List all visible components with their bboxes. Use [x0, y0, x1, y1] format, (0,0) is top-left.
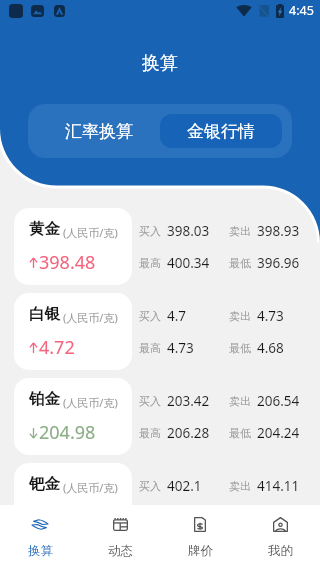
- staticText: 412.66: [39, 505, 96, 530]
- staticText: 最低: [229, 426, 251, 440]
- staticText: 最低: [229, 341, 251, 355]
- button[interactable]: 汇率换算: [38, 114, 160, 148]
- button[interactable]: 黄金: [14, 208, 132, 285]
- staticText: 换算: [28, 543, 53, 559]
- button[interactable]: 动态: [80, 505, 160, 569]
- staticText: 动态: [108, 543, 133, 559]
- staticText: 4.73: [167, 339, 194, 357]
- staticText: 400.34: [167, 254, 210, 272]
- staticText: 最高: [139, 341, 161, 355]
- staticText: 4.73: [257, 307, 284, 325]
- button[interactable]: 牌价: [160, 505, 240, 569]
- staticText: 4:45: [289, 2, 314, 19]
- staticText: 黄金: [29, 219, 60, 239]
- staticText: (人民币/克): [63, 225, 118, 240]
- staticText: 买入: [139, 309, 161, 323]
- staticText: 414.5: [167, 509, 202, 527]
- staticText: (人民币/克): [63, 395, 118, 410]
- staticText: 汇率换算: [65, 121, 133, 142]
- button[interactable]: 换算: [0, 505, 80, 569]
- staticText: 4.7: [167, 307, 187, 325]
- staticText: 206.28: [167, 424, 210, 442]
- button[interactable]: 白银: [14, 293, 132, 370]
- staticText: (人民币/克): [63, 310, 118, 325]
- staticText: 钯金: [29, 474, 60, 494]
- staticText: 最高: [139, 426, 161, 440]
- button[interactable]: 铂金: [14, 378, 132, 455]
- staticText: 买入: [139, 224, 161, 238]
- staticText: 卖出: [229, 309, 251, 323]
- staticText: 396.96: [257, 254, 300, 272]
- staticText: 402.1: [167, 477, 202, 495]
- staticText: 4.68: [257, 339, 284, 357]
- staticText: 白银: [29, 304, 60, 324]
- staticText: 买入: [139, 394, 161, 408]
- staticText: 398.93: [257, 222, 300, 240]
- staticText: 牌价: [188, 543, 213, 559]
- staticText: 最高: [139, 256, 161, 270]
- staticText: 卖出: [229, 394, 251, 408]
- staticText: 414.11: [257, 477, 300, 495]
- button[interactable]: 我的: [240, 505, 320, 569]
- staticText: 买入: [139, 479, 161, 493]
- staticText: 206.54: [257, 392, 300, 410]
- staticText: 我的: [268, 543, 293, 559]
- staticText: 换算: [0, 52, 320, 75]
- button[interactable]: 钯金: [14, 463, 132, 540]
- staticText: 4.72: [39, 335, 75, 360]
- staticText: (人民币/克): [63, 480, 118, 495]
- staticText: 金银行情: [187, 121, 255, 142]
- staticText: 最低: [229, 256, 251, 270]
- staticText: 204.24: [257, 424, 300, 442]
- staticText: 398.48: [39, 250, 96, 275]
- staticText: 铂金: [29, 389, 60, 409]
- staticText: 398.03: [167, 222, 210, 240]
- staticText: 卖出: [229, 224, 251, 238]
- staticText: 204.98: [39, 420, 96, 445]
- button[interactable]: 金银行情: [160, 114, 282, 148]
- staticText: 卖出: [229, 479, 251, 493]
- staticText: 402.1: [257, 509, 292, 527]
- staticText: 203.42: [167, 392, 210, 410]
